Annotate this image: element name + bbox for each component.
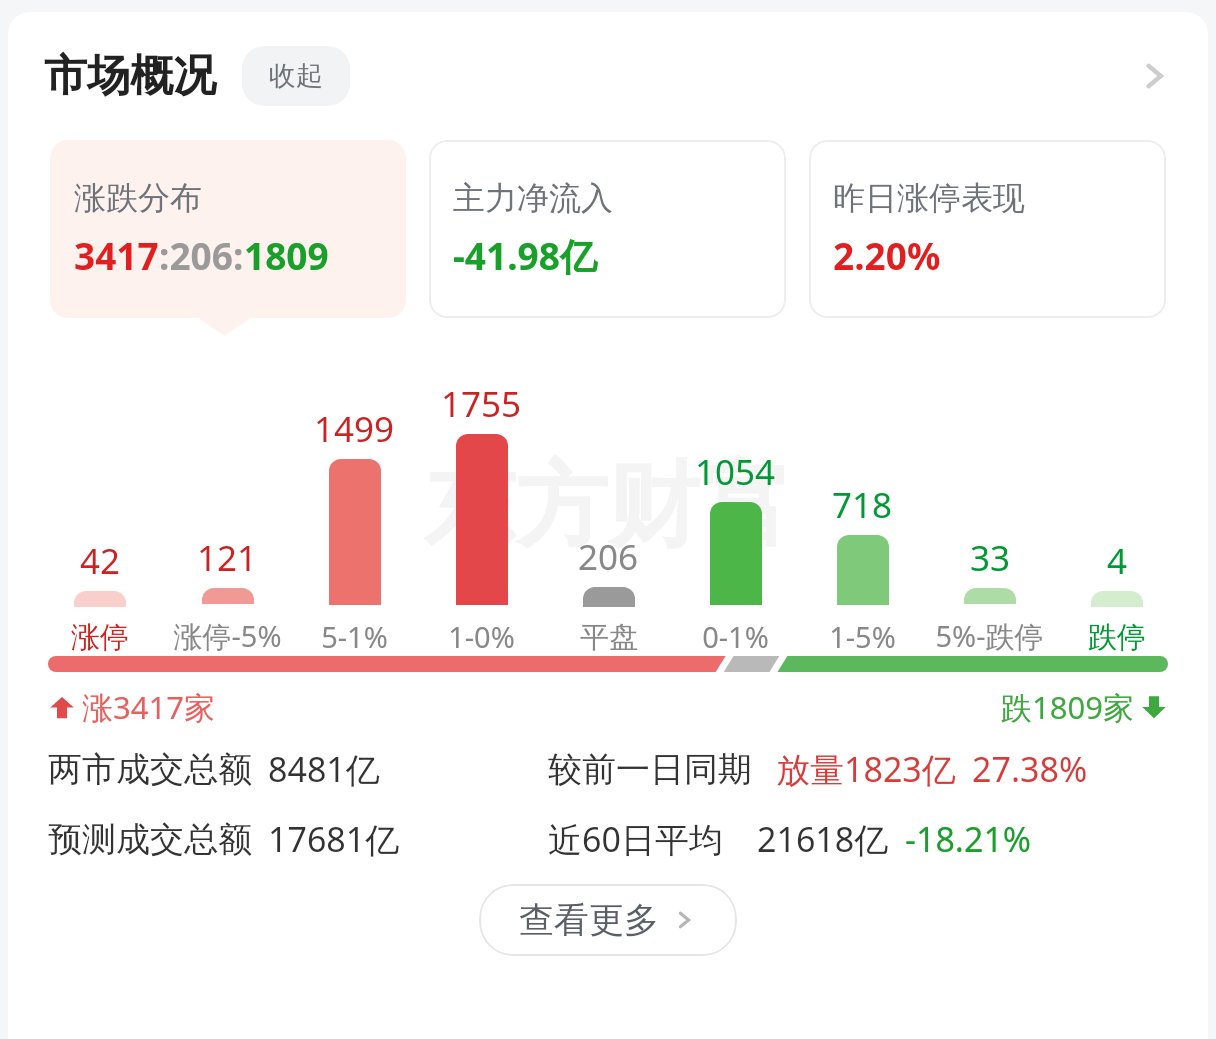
- staticText: 两市成交总额: [48, 748, 252, 791]
- staticText: 跌1809家: [1001, 686, 1134, 728]
- staticText: 收起: [269, 59, 323, 93]
- staticText: 涨跌分布: [74, 178, 202, 218]
- button[interactable]: 收起: [242, 46, 350, 106]
- staticText: 1755: [441, 380, 522, 428]
- staticText: 平盘: [580, 619, 638, 656]
- staticText: 较前一日同期: [548, 748, 752, 791]
- button[interactable]: 涨跌分布: [50, 140, 406, 318]
- staticText: :206:: [159, 230, 244, 280]
- staticText: 1499: [314, 405, 395, 453]
- staticText: 预测成交总额: [48, 818, 252, 861]
- staticText: 市场概况: [44, 49, 216, 103]
- button[interactable]: More: [1126, 48, 1182, 104]
- staticText: 5%-跌停: [935, 616, 1044, 656]
- staticText: 涨停: [71, 619, 129, 656]
- staticText: 21618亿: [757, 816, 889, 862]
- staticText: 主力净流入: [453, 178, 613, 218]
- staticText: 昨日涨停表现: [833, 178, 1025, 218]
- staticText: 放量1823亿: [776, 746, 956, 792]
- staticText: 涨停-5%: [173, 616, 282, 656]
- staticText: 33: [970, 534, 1011, 582]
- staticText: 1809: [244, 230, 329, 280]
- staticText: 3417: [74, 230, 159, 280]
- staticText: 东方财富: [424, 448, 792, 564]
- staticText: 2.20%: [833, 230, 941, 280]
- staticText: 涨3417家: [82, 686, 215, 728]
- staticText: -18.21%: [905, 816, 1032, 862]
- staticText: 查看更多: [519, 898, 659, 942]
- button[interactable]: 主力净流入: [429, 140, 786, 318]
- staticText: 4: [1107, 537, 1128, 585]
- staticText: 跌停: [1088, 619, 1146, 656]
- button[interactable]: 昨日涨停表现: [809, 140, 1166, 318]
- staticText: 718: [832, 481, 893, 529]
- staticText: 1-0%: [448, 617, 515, 656]
- staticText: 近60日平均: [548, 816, 723, 862]
- staticText: 1054: [695, 448, 776, 496]
- staticText: 27.38%: [972, 746, 1088, 792]
- staticText: 1-5%: [829, 617, 896, 656]
- staticText: 8481亿: [268, 746, 380, 792]
- staticText: 0-1%: [702, 617, 769, 656]
- staticText: 5-1%: [321, 617, 388, 656]
- button[interactable]: 查看更多: [479, 884, 737, 956]
- staticText: 121: [197, 534, 258, 582]
- staticText: 206: [578, 533, 639, 581]
- staticText: 42: [80, 537, 121, 585]
- staticText: -41.98亿: [453, 230, 597, 281]
- staticText: 17681亿: [268, 816, 400, 862]
